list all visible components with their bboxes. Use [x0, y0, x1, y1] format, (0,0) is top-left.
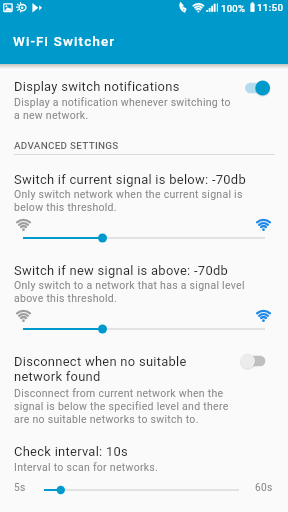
staticText: Display a notification whenever switchin…: [14, 96, 233, 122]
staticText: 11:50: [257, 2, 284, 13]
staticText: 100%: [221, 3, 246, 14]
button[interactable]: Display switch notifications: [0, 68, 288, 131]
button[interactable]: Disconnect when no suitable network foun…: [0, 344, 288, 429]
button[interactable]: Switch on: [239, 78, 271, 98]
staticText: Display switch notifications: [14, 79, 180, 94]
button[interactable]: Check interval: 10s: [0, 434, 288, 512]
staticText: Disconnect when no suitable network foun…: [14, 354, 214, 384]
button[interactable]: Slider: [44, 483, 239, 497]
staticText: Interval to scan for networks.: [14, 461, 159, 474]
button[interactable]: Switch if current signal is below: -70db: [0, 160, 288, 248]
button[interactable]: Slider: [23, 231, 265, 245]
button[interactable]: Wi-Fi Switcher: [0, 16, 288, 64]
staticText: Switch if new signal is above: -70db: [14, 263, 229, 278]
staticText: Wi-Fi Switcher: [13, 34, 116, 50]
staticText: Only switch network when the current sig…: [14, 188, 245, 214]
staticText: Check interval: 10s: [14, 444, 129, 459]
staticText: Only switch to a network that has a sign…: [14, 279, 245, 305]
staticText: ADVANCED SETTINGS: [14, 140, 119, 152]
staticText: Switch if current signal is below: -70db: [14, 172, 246, 187]
button[interactable]: Switch if new signal is above: -70db: [0, 251, 288, 339]
staticText: 60s: [255, 482, 273, 494]
button[interactable]: Slider: [23, 322, 265, 336]
staticText: Disconnect from current network when the…: [14, 387, 240, 426]
button[interactable]: Switch off: [240, 351, 272, 371]
staticText: 5s: [14, 482, 26, 494]
